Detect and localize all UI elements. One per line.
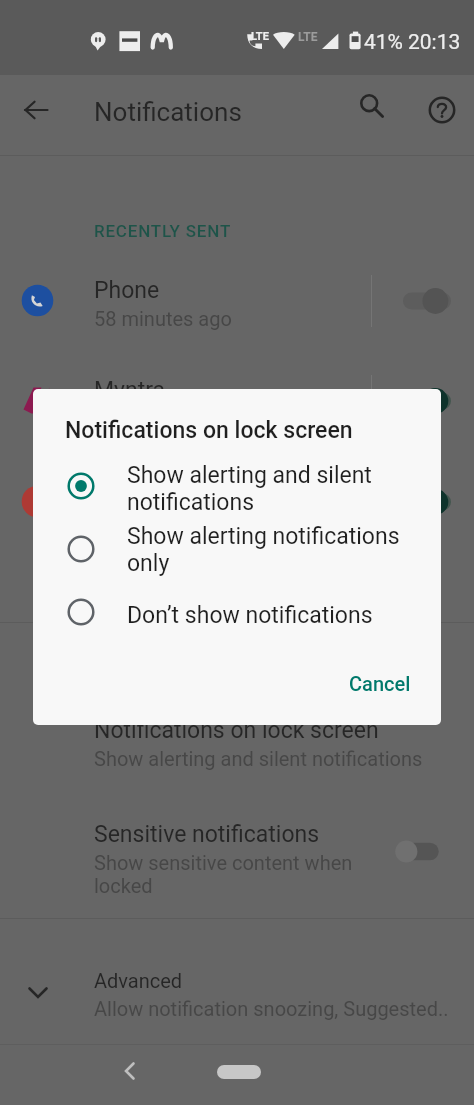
button[interactable]: Show alerting notifications	[33, 518, 441, 580]
staticText: 20:13	[408, 30, 461, 55]
staticText: 2 hours ago	[94, 508, 200, 531]
staticText: Sensitive notifications	[94, 821, 320, 848]
staticText: 41%	[364, 30, 403, 55]
staticText: Allow notification snoozing, Suggested..	[94, 997, 449, 1020]
button[interactable]: Search	[348, 82, 404, 138]
staticText: Show alerting and silent notifications	[94, 747, 423, 770]
staticText: LTE	[298, 30, 318, 44]
button[interactable]: Sensitive notifications toggle	[388, 829, 444, 874]
button[interactable]: Help	[414, 82, 470, 138]
staticText: 1 hour ago	[94, 407, 189, 430]
staticText: locked	[94, 874, 153, 897]
button[interactable]: Myntra	[0, 354, 474, 447]
staticText: Notifications on lock screen	[65, 417, 353, 444]
button[interactable]: Phone	[0, 254, 474, 347]
staticText: Cancel	[349, 672, 411, 695]
staticText: Notifications on lock screen	[94, 717, 379, 744]
staticText: 58 minutes ago	[94, 307, 232, 330]
button[interactable]: Advanced	[0, 948, 474, 1034]
button[interactable]: Cancel	[333, 658, 427, 708]
staticText: RECENTLY SENT	[94, 221, 232, 241]
button[interactable]: Gmail notifications toggle	[395, 479, 455, 525]
button[interactable]: Phone notifications toggle	[395, 278, 455, 324]
staticText: Show alerting and silent	[127, 462, 372, 489]
staticText: Notifications	[94, 97, 242, 127]
staticText: Phone	[94, 277, 160, 304]
staticText: only	[127, 550, 170, 577]
staticText: notifications	[127, 489, 255, 516]
staticText: Show alerting notifications	[127, 523, 400, 550]
staticText: Don’t show notifications	[127, 602, 373, 629]
button[interactable]: Show alerting and silent	[33, 455, 441, 517]
staticText: Myntra	[94, 377, 166, 404]
button[interactable]: Don’t show notifications	[33, 581, 441, 643]
button[interactable]: Home	[217, 1065, 261, 1079]
button[interactable]: Back	[104, 1045, 156, 1097]
staticText: Gmail	[94, 478, 154, 505]
button[interactable]: Myntra notifications toggle	[395, 378, 455, 424]
button[interactable]: Gmail	[0, 455, 474, 548]
staticText: LTE	[251, 30, 269, 43]
staticText: Advanced	[94, 969, 183, 992]
button[interactable]: Back	[8, 82, 64, 138]
staticText: Show sensitive content when	[94, 851, 353, 874]
